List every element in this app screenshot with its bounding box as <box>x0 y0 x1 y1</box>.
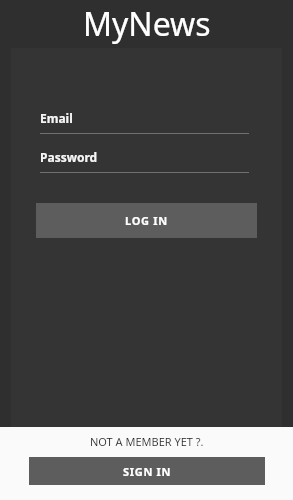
staticText: Email <box>40 110 73 126</box>
button[interactable]: LOG IN <box>36 203 257 238</box>
staticText: NOT A MEMBER YET ?. <box>90 434 204 449</box>
button[interactable]: SIGN IN <box>29 457 265 485</box>
staticText: SIGN IN <box>123 464 172 479</box>
staticText: Password <box>40 149 98 165</box>
button[interactable]: Email <box>40 110 249 134</box>
staticText: MyNews <box>83 2 211 46</box>
staticText: LOG IN <box>125 213 168 228</box>
button[interactable]: Password <box>40 149 249 173</box>
